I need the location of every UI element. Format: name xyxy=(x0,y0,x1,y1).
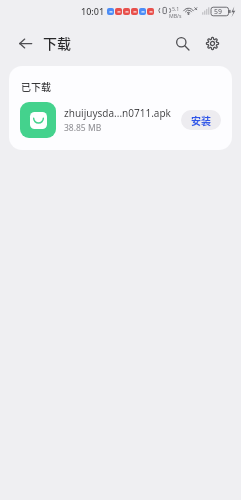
staticText: zhuijuysda...n0711.apk xyxy=(64,106,171,120)
button[interactable]: Back xyxy=(12,30,38,56)
staticText: 下载 xyxy=(43,33,71,53)
staticText: 59 xyxy=(214,7,223,17)
button[interactable]: Search xyxy=(169,30,195,56)
button[interactable]: zhuijuysda...n0711.apk xyxy=(20,100,221,140)
staticText: 38.85 MB xyxy=(64,122,102,134)
staticText: 安装 xyxy=(191,113,211,127)
staticText: 5.1 xyxy=(172,5,180,12)
staticText: 已下载 xyxy=(21,79,51,93)
staticText: 10:01 xyxy=(81,5,105,17)
staticText: MB/s xyxy=(169,12,182,19)
button[interactable]: Settings xyxy=(199,30,225,56)
button[interactable]: 安装 xyxy=(181,110,221,130)
